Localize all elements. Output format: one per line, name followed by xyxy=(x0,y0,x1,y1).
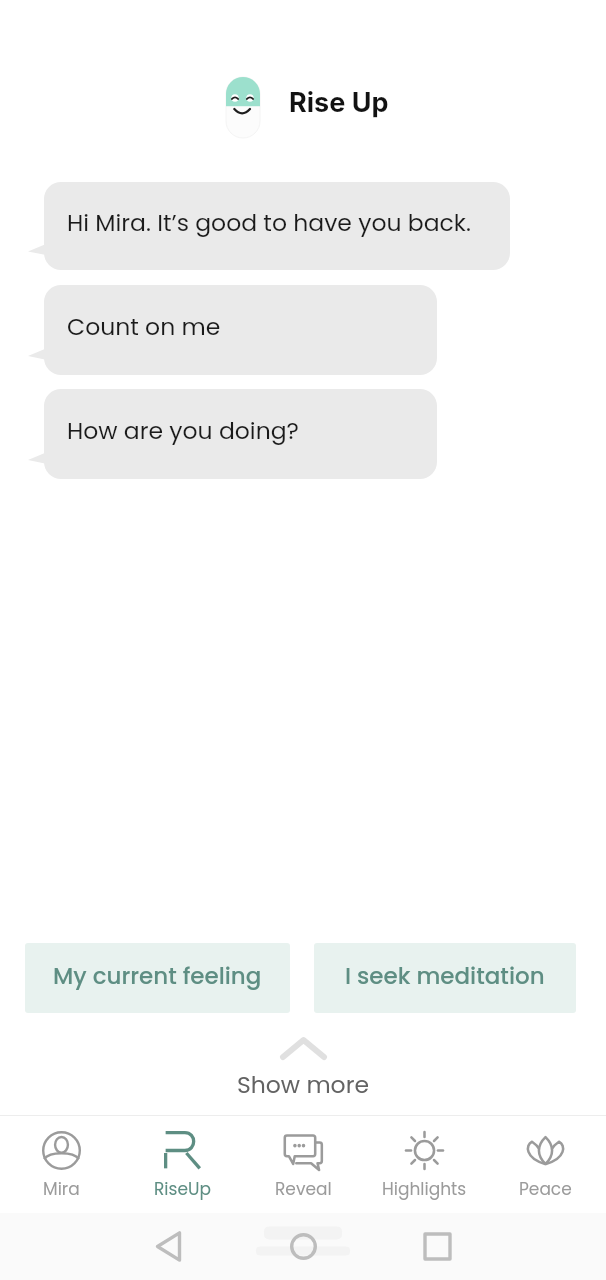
staticText: Highlights xyxy=(382,1177,467,1201)
staticText: Show more xyxy=(237,1068,369,1101)
staticText: My current feeling xyxy=(53,960,262,992)
button[interactable]: Hi Mira. It’s good to have you back. xyxy=(44,182,510,270)
button[interactable]: Show more xyxy=(0,1034,606,1101)
staticText: Rise Up xyxy=(289,86,389,119)
button[interactable]: Mira xyxy=(0,1128,122,1201)
staticText: I seek meditation xyxy=(345,960,545,992)
button[interactable]: My current feeling xyxy=(25,943,290,1013)
staticText: Reveal xyxy=(275,1177,332,1201)
staticText: Mira xyxy=(43,1177,80,1201)
staticText: RiseUp xyxy=(154,1177,211,1201)
button[interactable]: Back xyxy=(146,1224,190,1268)
staticText: Count on me xyxy=(67,310,221,343)
staticText: How are you doing? xyxy=(67,414,299,447)
button[interactable]: RiseUp xyxy=(122,1128,243,1201)
staticText: Peace xyxy=(519,1177,572,1201)
button[interactable]: I seek meditation xyxy=(314,943,576,1013)
button[interactable]: Peace xyxy=(485,1128,606,1201)
button[interactable]: Home xyxy=(281,1224,325,1268)
staticText: Hi Mira. It’s good to have you back. xyxy=(67,206,471,239)
button[interactable]: Highlights xyxy=(364,1128,485,1201)
button[interactable]: Recents xyxy=(415,1224,459,1268)
button[interactable]: Count on me xyxy=(44,285,437,375)
button[interactable]: Reveal xyxy=(243,1128,364,1201)
button[interactable]: How are you doing? xyxy=(44,389,437,479)
